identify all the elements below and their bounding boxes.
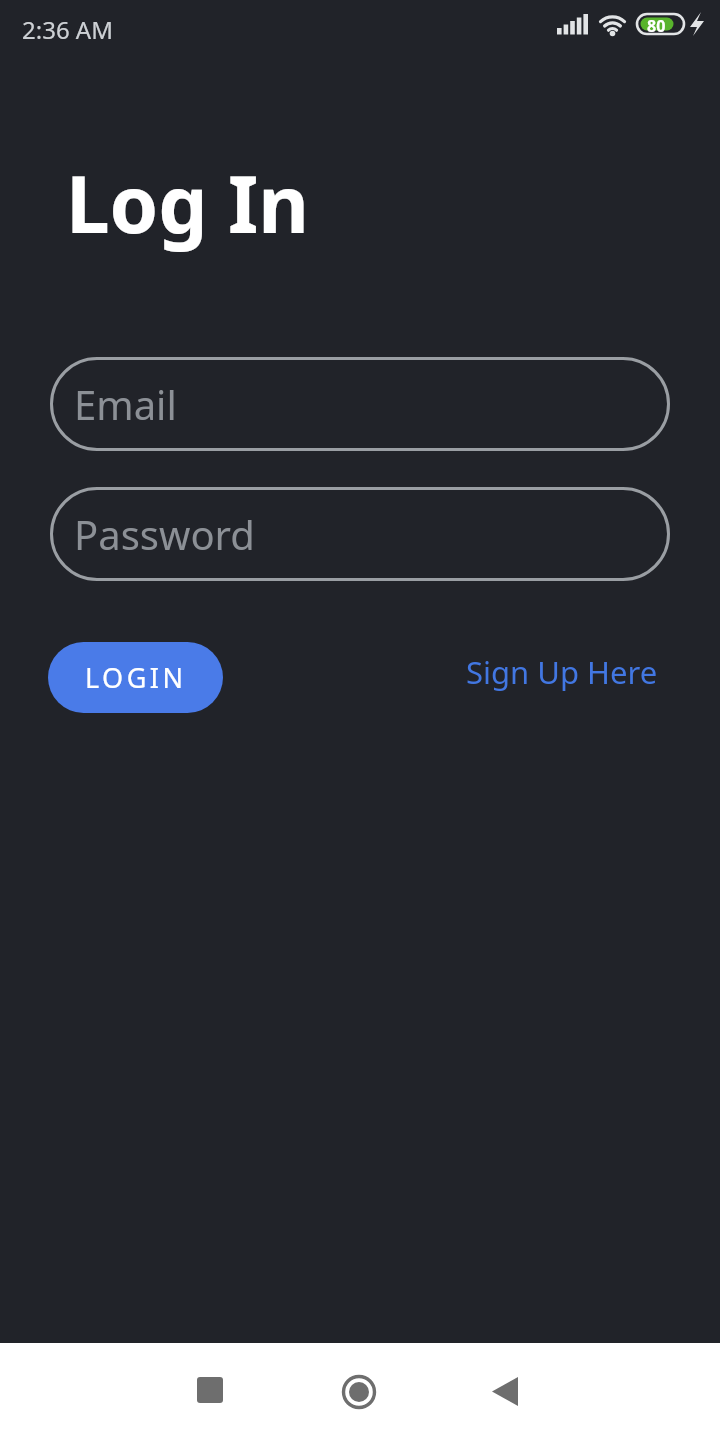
button[interactable] <box>479 1364 531 1416</box>
staticText: Email <box>74 377 177 431</box>
button[interactable] <box>333 1364 385 1416</box>
staticText: LOGIN <box>85 659 187 696</box>
staticText: Log In <box>66 150 309 256</box>
button[interactable] <box>184 1364 236 1416</box>
staticText: Password <box>74 507 255 561</box>
staticText: Sign Up Here <box>466 651 658 693</box>
staticText: 2:36 AM <box>22 13 113 46</box>
button[interactable]: LOGIN <box>48 642 223 713</box>
staticText: 80 <box>647 15 666 37</box>
button[interactable]: Password <box>50 487 670 581</box>
button[interactable]: Email <box>50 357 670 451</box>
button[interactable]: Sign Up Here <box>430 650 658 694</box>
